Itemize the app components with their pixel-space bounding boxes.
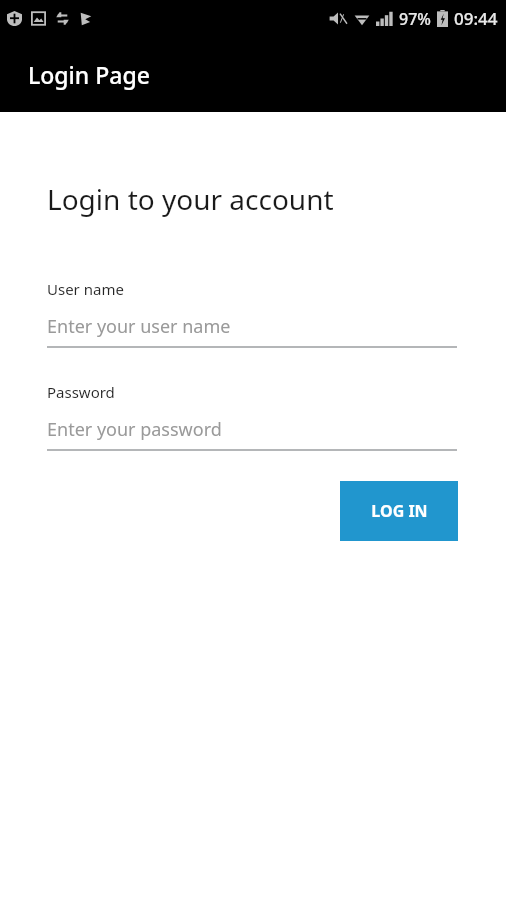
staticText: Enter your password (47, 417, 222, 442)
staticText: User name (47, 279, 124, 299)
staticText: Login Page (28, 59, 150, 90)
staticText: Enter your user name (47, 314, 231, 339)
button[interactable]: Enter your user name (47, 314, 457, 348)
staticText: 09:44 (454, 7, 498, 30)
staticText: Login to your account (47, 180, 334, 218)
staticText: 97% (399, 8, 431, 30)
button[interactable]: LOG IN (340, 481, 458, 541)
staticText: LOG IN (371, 500, 428, 522)
staticText: Password (47, 382, 115, 402)
button[interactable]: Enter your password (47, 417, 457, 451)
